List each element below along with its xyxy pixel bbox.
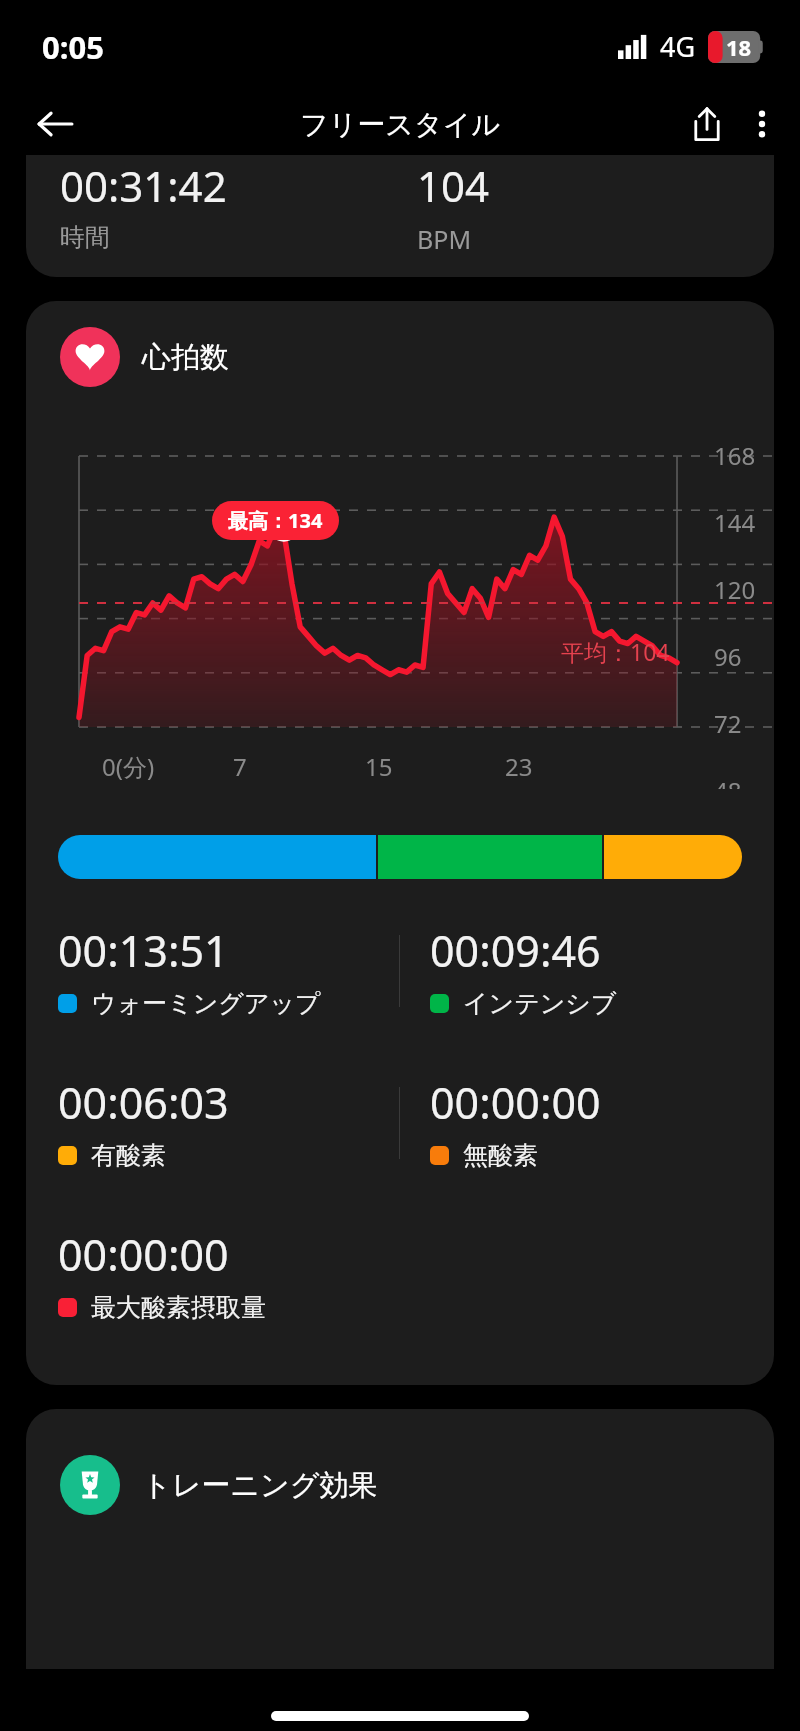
staticText: BPM <box>417 222 472 256</box>
staticText: 96 <box>714 640 742 673</box>
staticText: 23 <box>505 750 533 783</box>
staticText: 心拍数 <box>142 339 229 376</box>
staticText: 144 <box>714 506 756 539</box>
button[interactable]: 00:09:46 <box>430 921 742 1019</box>
staticText: 0:05 <box>42 26 104 68</box>
button[interactable]: 00:06:03 <box>58 1073 399 1171</box>
staticText: インテンシブ <box>463 988 617 1019</box>
button[interactable]: トレーニング効果 <box>26 1409 774 1669</box>
staticText: 4G <box>660 28 696 65</box>
staticText: 時間 <box>60 222 110 253</box>
staticText: 00:00:00 <box>430 1073 601 1132</box>
button[interactable]: 心拍数 <box>26 301 774 1385</box>
staticText: 最高：134 <box>228 507 323 534</box>
staticText: 104 <box>417 157 490 214</box>
staticText: フリースタイル <box>300 107 500 142</box>
staticText: 72 <box>714 707 742 740</box>
button[interactable]: More options <box>738 93 786 155</box>
staticText: 00:00:00 <box>58 1225 229 1284</box>
staticText: 7 <box>233 750 247 783</box>
staticText: 18 <box>726 32 752 62</box>
button[interactable]: Back <box>26 95 84 153</box>
staticText: 48 <box>714 774 742 789</box>
button[interactable]: 00:31:42 <box>26 155 774 277</box>
staticText: 00:09:46 <box>430 921 601 980</box>
button[interactable]: 00:00:00 <box>58 1225 400 1323</box>
staticText: 15 <box>365 750 393 783</box>
staticText: 有酸素 <box>91 1140 166 1171</box>
button[interactable]: 00:00:00 <box>430 1073 742 1171</box>
staticText: 0(分) <box>102 750 155 783</box>
staticText: トレーニング効果 <box>142 1467 378 1504</box>
button[interactable]: 00:13:51 <box>58 921 399 1019</box>
staticText: 00:13:51 <box>58 921 229 980</box>
staticText: 00:06:03 <box>58 1073 229 1132</box>
staticText: 120 <box>714 573 756 606</box>
button[interactable]: Share <box>676 93 738 155</box>
staticText: ウォーミングアップ <box>91 988 321 1019</box>
staticText: 平均：104 <box>561 636 670 667</box>
staticText: 無酸素 <box>463 1140 538 1171</box>
staticText: 最大酸素摂取量 <box>91 1292 266 1323</box>
staticText: 168 <box>714 439 756 472</box>
staticText: 00:31:42 <box>60 157 227 214</box>
